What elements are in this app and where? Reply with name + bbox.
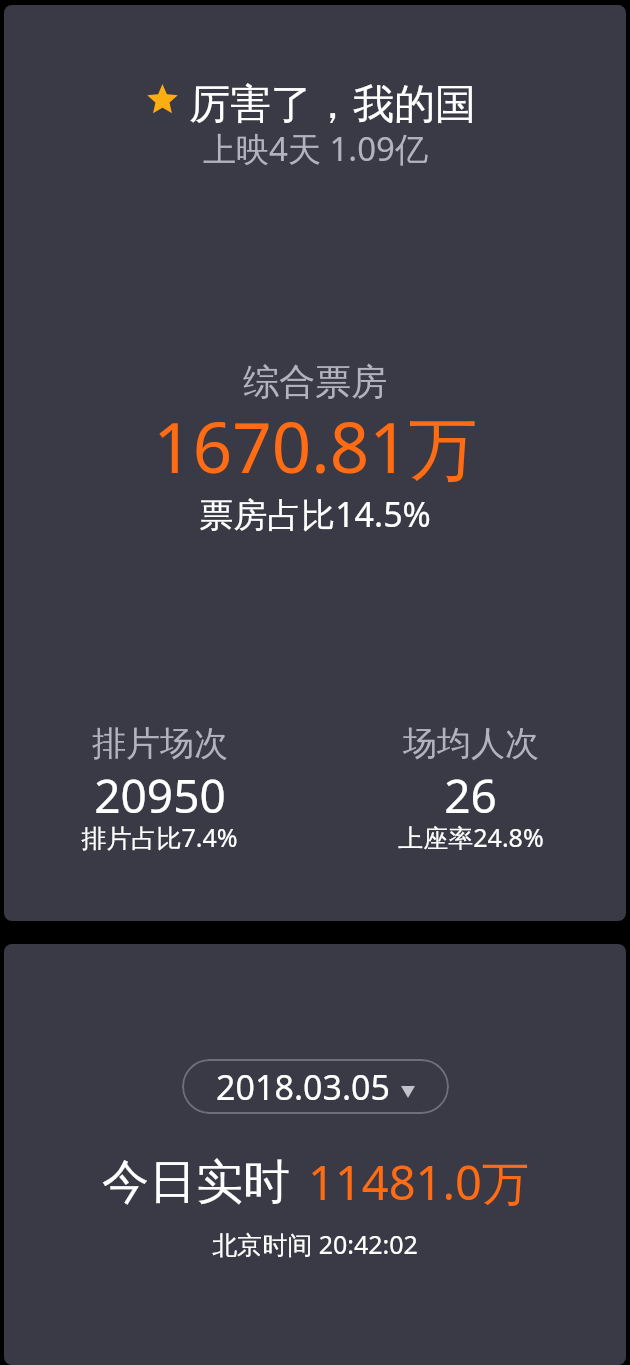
button[interactable]: Favourite	[4, 5, 626, 921]
staticText: 今日实时	[102, 1153, 290, 1212]
button[interactable]: 2018.03.05	[182, 1059, 449, 1114]
staticText: 1670.81万	[153, 399, 478, 493]
staticText: 票房占比14.5%	[199, 491, 431, 537]
staticText: 排片场次	[92, 722, 228, 765]
staticText: 厉害了，我的国	[189, 79, 476, 131]
button[interactable]: 2018.03.05	[4, 944, 626, 1365]
staticText: 上映4天 1.09亿	[203, 126, 428, 171]
other: Favourite	[151, 88, 174, 111]
staticText: 综合票房	[243, 359, 387, 404]
staticText: 场均人次	[403, 722, 539, 765]
staticText: 11481.0万	[308, 1150, 529, 1214]
staticText: 排片占比7.4%	[81, 820, 238, 854]
staticText: 上座率24.8%	[398, 820, 544, 854]
staticText: 20950	[94, 764, 226, 827]
staticText: 北京时间 20:42:02	[212, 1227, 418, 1261]
staticText: 26	[444, 764, 497, 827]
staticText: 2018.03.05	[216, 1064, 390, 1110]
other: Choose date	[401, 1079, 415, 1105]
